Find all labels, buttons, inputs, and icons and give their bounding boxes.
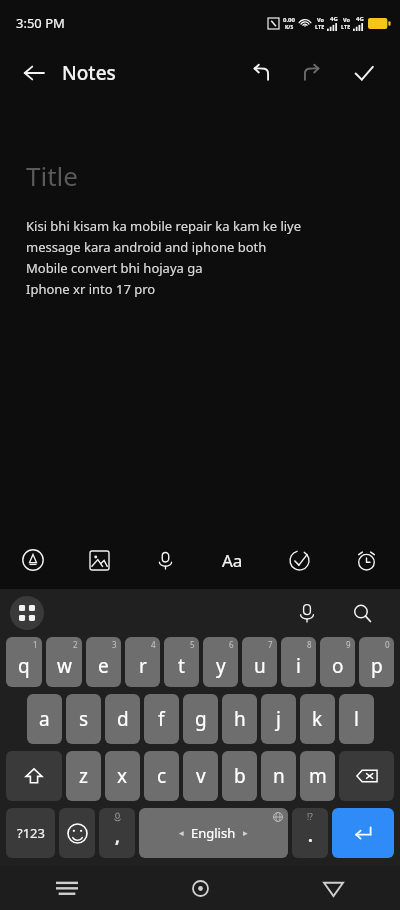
button[interactable]: 7 bbox=[242, 637, 277, 687]
button[interactable]: Keyboard modes bbox=[10, 596, 44, 630]
button[interactable]: Period bbox=[292, 808, 328, 858]
button[interactable]: z bbox=[66, 751, 101, 801]
button[interactable]: l bbox=[339, 694, 374, 744]
staticText: s bbox=[79, 706, 89, 732]
staticText: a bbox=[39, 706, 50, 732]
staticText: j bbox=[276, 706, 281, 732]
staticText: q bbox=[18, 653, 30, 679]
staticText: m bbox=[309, 763, 327, 789]
button[interactable]: Backspace bbox=[339, 751, 394, 801]
staticText: Aa bbox=[222, 549, 243, 572]
staticText: e bbox=[98, 653, 109, 679]
staticText: 4G bbox=[356, 15, 364, 23]
button[interactable]: Search bbox=[342, 593, 382, 633]
staticText: 8 bbox=[307, 639, 312, 650]
button[interactable]: Back bbox=[14, 53, 54, 93]
button[interactable]: Draw bbox=[0, 531, 66, 589]
button[interactable]: 9 bbox=[320, 637, 355, 687]
staticText: c bbox=[157, 763, 167, 789]
button[interactable]: f bbox=[144, 694, 179, 744]
button[interactable]: Recents bbox=[0, 866, 134, 910]
staticText: 7 bbox=[268, 639, 273, 650]
staticText: 5 bbox=[190, 639, 195, 650]
staticText: 4G bbox=[330, 15, 338, 23]
button[interactable]: Emoji bbox=[59, 808, 95, 858]
staticText: 0.00 bbox=[283, 16, 295, 24]
staticText: !? bbox=[307, 811, 313, 822]
staticText: 3:50 PM bbox=[16, 14, 65, 32]
staticText: LTE bbox=[341, 23, 351, 30]
staticText: Iphone xr into 17 pro bbox=[26, 280, 156, 298]
button[interactable]: Redo bbox=[290, 51, 334, 95]
staticText: 9 bbox=[346, 639, 351, 650]
button[interactable]: 4 bbox=[125, 637, 160, 687]
button[interactable]: x bbox=[105, 751, 140, 801]
button[interactable]: m bbox=[300, 751, 335, 801]
button[interactable]: Voice input bbox=[287, 593, 327, 633]
staticText: t bbox=[178, 653, 185, 679]
staticText: message kara android and iphone both bbox=[26, 238, 267, 256]
button[interactable]: Format text bbox=[199, 531, 266, 589]
button[interactable]: Insert image bbox=[66, 531, 132, 589]
button[interactable]: h bbox=[222, 694, 257, 744]
staticText: d bbox=[117, 706, 129, 732]
button[interactable]: g bbox=[183, 694, 218, 744]
button[interactable]: Back bbox=[267, 866, 400, 910]
button[interactable]: 5 bbox=[164, 637, 199, 687]
button[interactable]: Comma bbox=[99, 808, 135, 858]
staticText: ▸ bbox=[243, 828, 248, 838]
staticText: Mobile convert bhi hojaya ga bbox=[26, 259, 203, 277]
button[interactable]: 3 bbox=[86, 637, 121, 687]
staticText: p bbox=[371, 653, 383, 679]
button[interactable]: s bbox=[66, 694, 101, 744]
button[interactable]: 8 bbox=[281, 637, 316, 687]
staticText: . bbox=[308, 824, 313, 847]
button[interactable]: d bbox=[105, 694, 140, 744]
staticText: 6 bbox=[229, 639, 234, 650]
button[interactable]: Reminder bbox=[333, 531, 400, 589]
button[interactable]: Symbols bbox=[6, 808, 55, 858]
staticText: 4 bbox=[151, 639, 156, 650]
button[interactable]: k bbox=[300, 694, 335, 744]
staticText: K/S bbox=[285, 24, 294, 31]
staticText: b bbox=[234, 763, 246, 789]
staticText: Notes bbox=[62, 60, 116, 86]
button[interactable]: b bbox=[222, 751, 257, 801]
staticText: z bbox=[79, 763, 88, 789]
staticText: Title bbox=[26, 158, 78, 193]
button[interactable]: 0 bbox=[359, 637, 394, 687]
staticText: y bbox=[216, 653, 226, 679]
staticText: k bbox=[312, 706, 323, 732]
button[interactable]: Space bbox=[139, 808, 288, 858]
staticText: 2 bbox=[73, 639, 78, 650]
staticText: 1 bbox=[33, 639, 38, 650]
button[interactable]: 1 bbox=[6, 637, 42, 687]
button[interactable]: n bbox=[261, 751, 296, 801]
button[interactable]: j bbox=[261, 694, 296, 744]
staticText: LTE bbox=[315, 23, 325, 30]
staticText: Vo bbox=[317, 16, 324, 23]
button[interactable]: Undo bbox=[238, 51, 282, 95]
button[interactable]: c bbox=[144, 751, 179, 801]
button[interactable]: Voice note bbox=[132, 531, 199, 589]
button[interactable]: Save bbox=[342, 51, 386, 95]
staticText: n bbox=[273, 763, 285, 789]
button[interactable]: v bbox=[183, 751, 218, 801]
staticText: Vo bbox=[343, 16, 350, 23]
button[interactable]: Enter bbox=[332, 808, 394, 858]
staticText: r bbox=[139, 653, 147, 679]
button[interactable]: Checklist bbox=[266, 531, 333, 589]
staticText: Kisi bhi kisam ka mobile repair ka kam k… bbox=[26, 217, 302, 235]
staticText: 0 bbox=[385, 639, 390, 650]
staticText: v bbox=[196, 763, 206, 789]
button[interactable]: Home bbox=[134, 866, 267, 910]
staticText: w bbox=[57, 653, 72, 679]
button[interactable]: Shift bbox=[6, 751, 62, 801]
staticText: g bbox=[195, 706, 207, 732]
staticText: o bbox=[332, 653, 344, 679]
staticText: f bbox=[158, 706, 165, 732]
button[interactable]: 2 bbox=[46, 637, 82, 687]
button[interactable]: a bbox=[27, 694, 62, 744]
button[interactable]: 6 bbox=[203, 637, 238, 687]
staticText: u bbox=[254, 653, 266, 679]
